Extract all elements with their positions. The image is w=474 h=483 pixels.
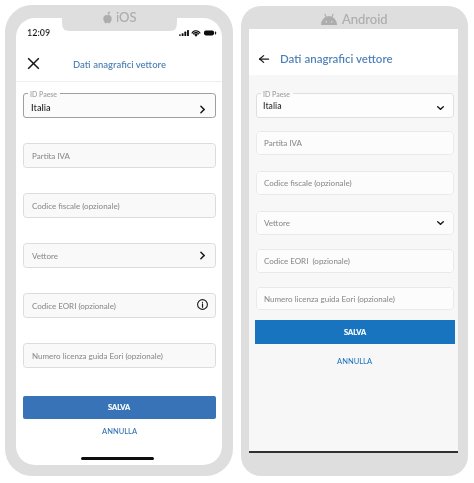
- staticText: Italia: [263, 101, 282, 111]
- staticText: Numero licenza guida Eori (opzionale): [32, 351, 163, 361]
- staticText: Numero licenza guida Eori (opzionale): [264, 294, 395, 304]
- staticText: Codice EORI (opzionale): [264, 256, 350, 266]
- button[interactable]: ANNULLA: [23, 423, 216, 440]
- staticText: Vettore: [264, 218, 290, 228]
- staticText: 12:09: [27, 27, 51, 38]
- button[interactable]: Vettore: [256, 211, 454, 235]
- staticText: Italia: [31, 102, 51, 113]
- staticText: SALVA: [108, 403, 131, 412]
- button[interactable]: Vettore: [23, 243, 216, 268]
- button[interactable]: ANNULLA: [256, 353, 454, 370]
- staticText: Codice fiscale (opzionale): [32, 201, 120, 211]
- staticText: iOS: [116, 9, 137, 25]
- staticText: SALVA: [344, 328, 367, 337]
- button[interactable]: Back: [254, 49, 274, 69]
- button[interactable]: Codice fiscale (opzionale): [23, 193, 216, 218]
- staticText: Android: [342, 11, 388, 27]
- staticText: Vettore: [32, 251, 58, 261]
- button[interactable]: Dati anagrafici vettore: [62, 56, 176, 72]
- staticText: ID Paese: [263, 90, 291, 98]
- staticText: Codice EORI (opzionale): [32, 301, 116, 311]
- staticText: ID Paese: [30, 90, 58, 98]
- staticText: Partita IVA: [264, 138, 303, 148]
- button[interactable]: Codice EORI (opzionale): [23, 293, 216, 318]
- staticText: ANNULLA: [102, 427, 138, 436]
- button[interactable]: SALVA: [23, 396, 216, 419]
- button[interactable]: SALVA: [255, 320, 455, 344]
- staticText: Partita IVA: [32, 151, 71, 161]
- button[interactable]: Numero licenza guida Eori (opzionale): [256, 287, 454, 310]
- button[interactable]: ID Paese: [23, 93, 216, 118]
- button[interactable]: Dati anagrafici vettore: [280, 50, 400, 68]
- staticText: ANNULLA: [337, 357, 373, 366]
- button[interactable]: Numero licenza guida Eori (opzionale): [23, 343, 216, 368]
- button[interactable]: ID Paese: [256, 93, 454, 118]
- staticText: Codice fiscale (opzionale): [264, 178, 352, 188]
- button[interactable]: Codice EORI (opzionale): [256, 249, 454, 273]
- staticText: Dati anagrafici vettore: [73, 59, 166, 70]
- button[interactable]: Close: [23, 53, 43, 73]
- button[interactable]: Partita IVA: [256, 131, 454, 155]
- button[interactable]: Partita IVA: [23, 143, 216, 168]
- staticText: Dati anagrafici vettore: [280, 52, 393, 66]
- button[interactable]: Codice fiscale (opzionale): [256, 171, 454, 195]
